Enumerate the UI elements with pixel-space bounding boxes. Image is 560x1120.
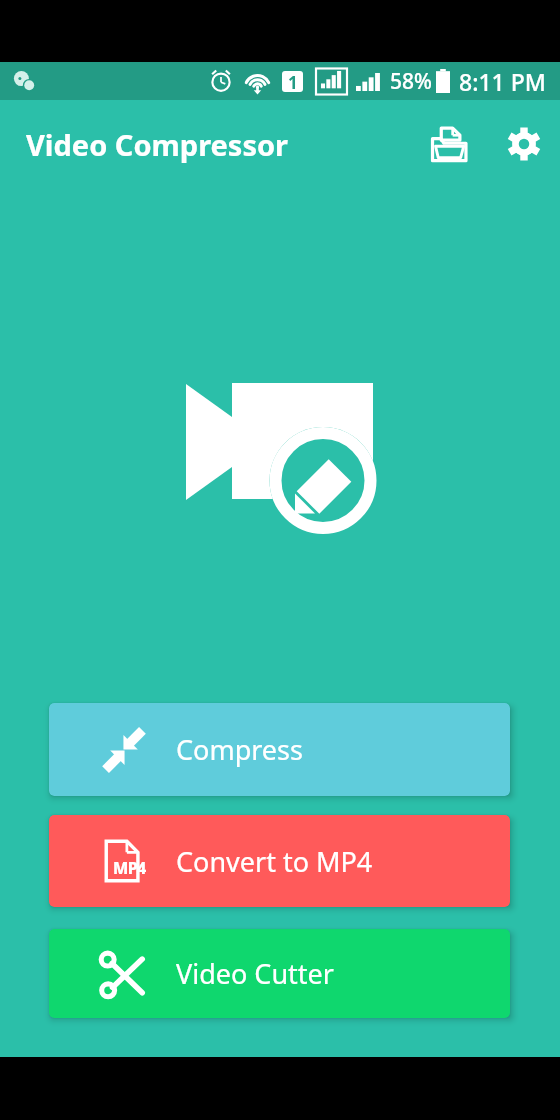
staticText: MP4 (113, 857, 146, 879)
button[interactable]: MP4 (49, 815, 510, 907)
staticText: Convert to MP4 (176, 843, 373, 880)
staticText: Compress (176, 731, 303, 768)
staticText: 8:11 PM (459, 66, 546, 97)
button[interactable]: Video Cutter (49, 929, 510, 1018)
staticText: 58% (390, 67, 432, 96)
staticText: 1 (288, 71, 298, 92)
staticText: Video Cutter (176, 955, 334, 992)
staticText: Video Compressor (26, 125, 289, 164)
button[interactable]: Open folder (420, 114, 480, 174)
button[interactable]: Settings (496, 116, 552, 172)
button[interactable]: Compress (49, 703, 510, 796)
